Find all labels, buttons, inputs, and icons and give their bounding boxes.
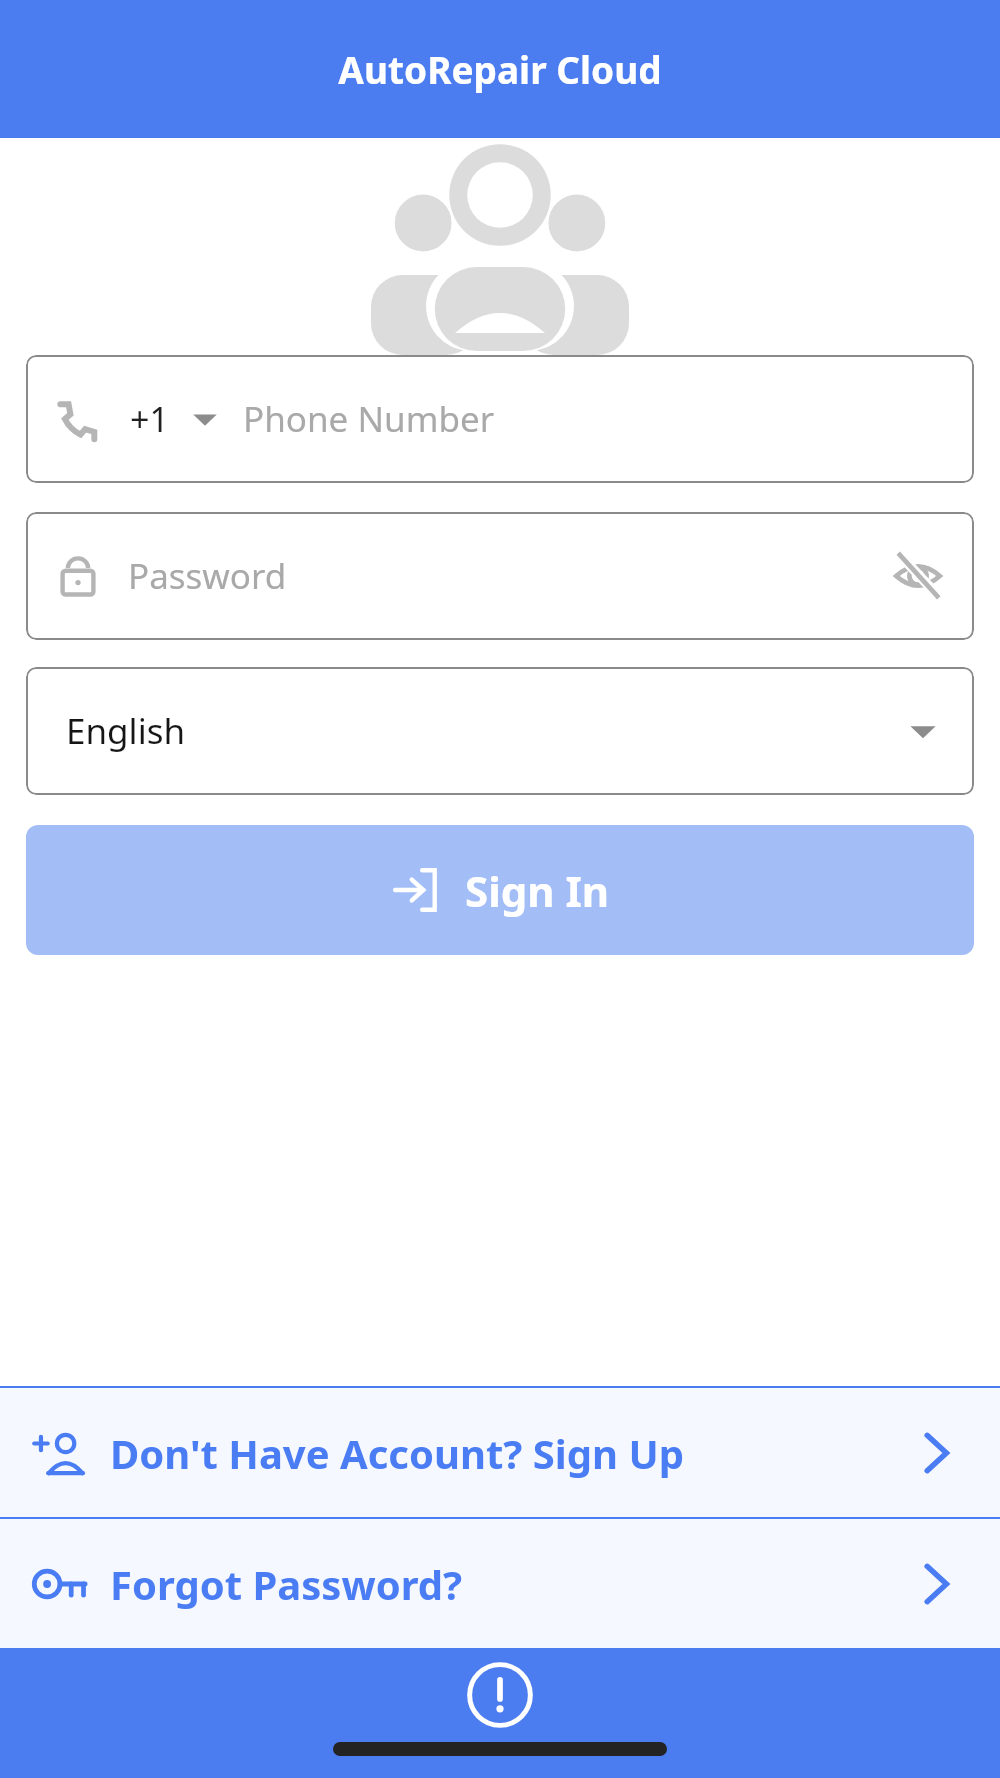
button[interactable]: Sign In: [26, 825, 974, 955]
staticText: AutoRepair Cloud: [338, 44, 662, 94]
button[interactable]: Password: [26, 512, 974, 640]
staticText: Password: [128, 552, 890, 600]
button[interactable]: Information: [467, 1662, 533, 1728]
button[interactable]: +1: [26, 355, 974, 483]
staticText: English: [66, 707, 908, 755]
staticText: Forgot Password?: [110, 1557, 910, 1611]
button[interactable]: Show password: [890, 548, 946, 604]
button[interactable]: Don't Have Account? Sign Up: [0, 1388, 1000, 1517]
staticText: Don't Have Account? Sign Up: [110, 1426, 910, 1480]
staticText: +1: [130, 396, 169, 442]
staticText: Phone Number: [243, 395, 495, 443]
button[interactable]: Forgot Password?: [0, 1519, 1000, 1648]
staticText: Sign In: [465, 862, 610, 919]
button[interactable]: English: [26, 667, 974, 795]
